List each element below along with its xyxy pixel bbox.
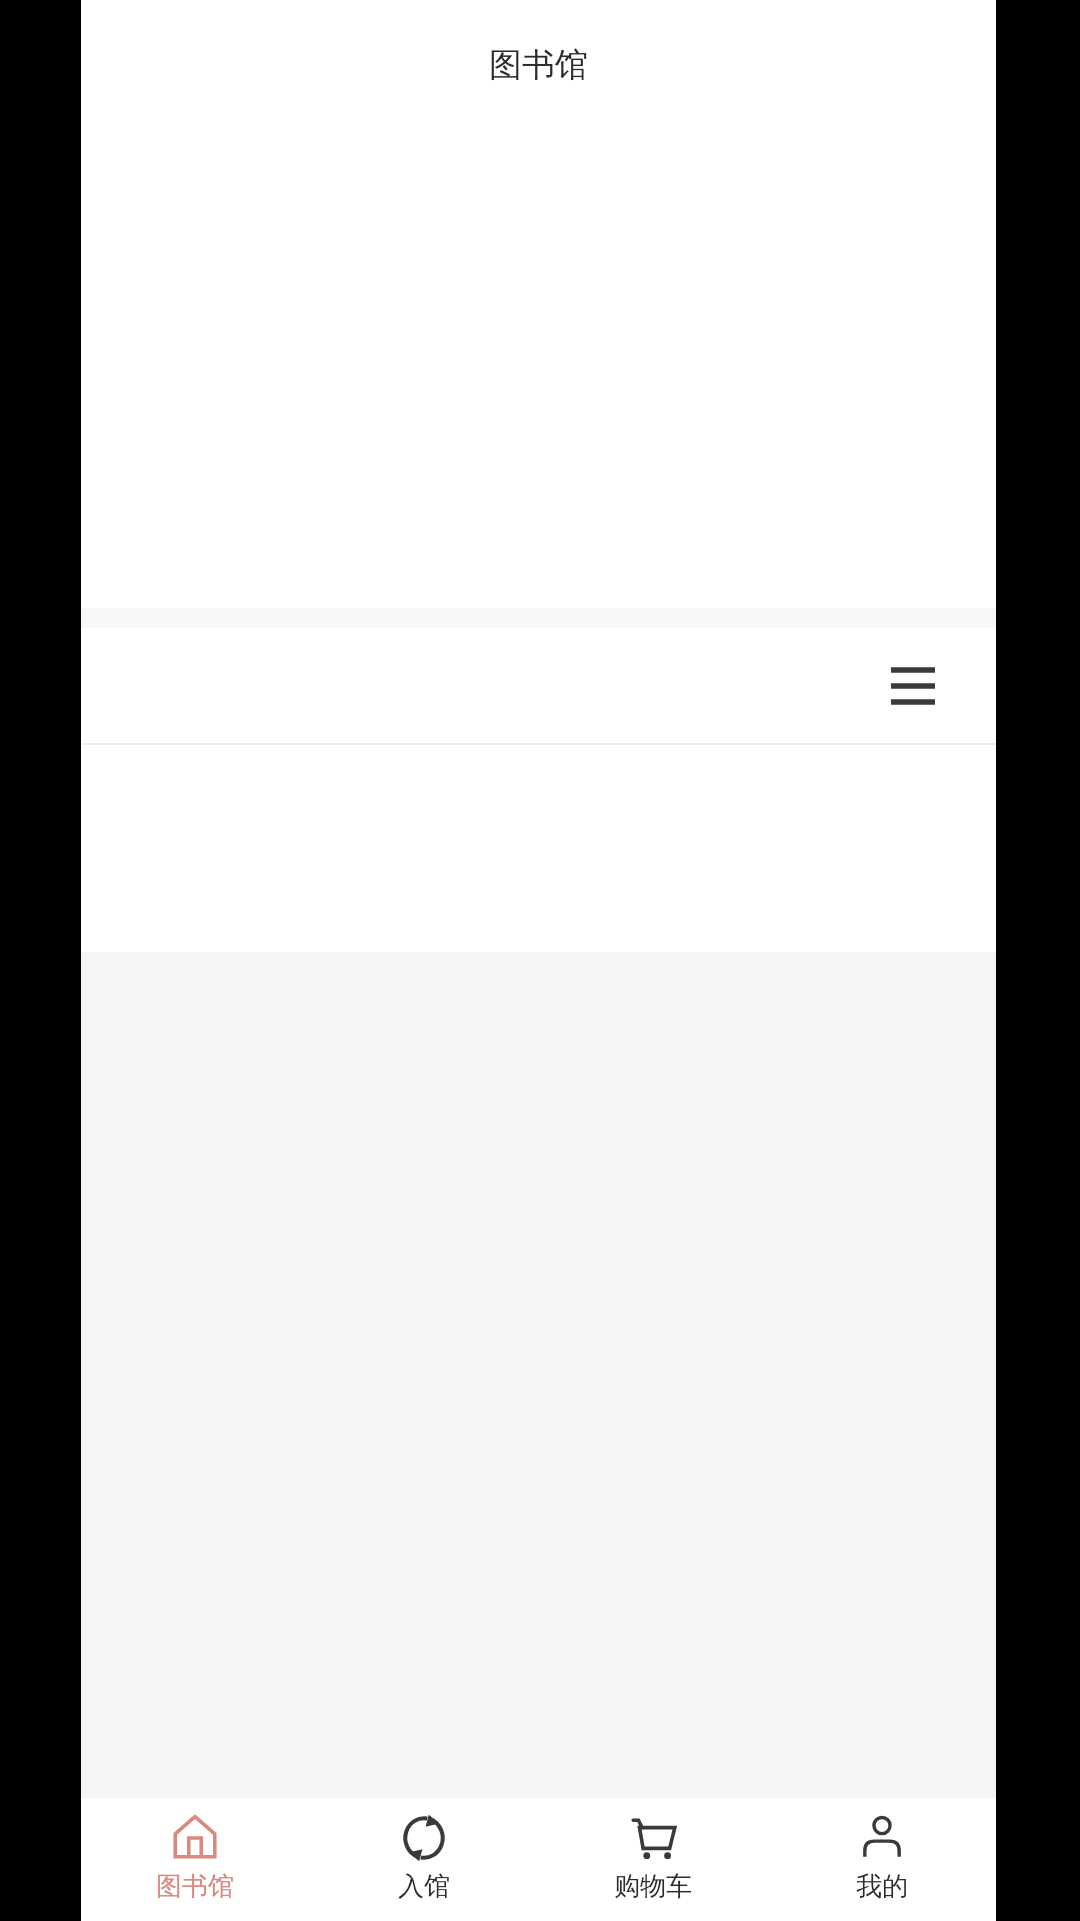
button[interactable]: 入馆 [309,1798,538,1921]
button[interactable]: Menu [883,656,943,716]
staticText: 图书馆 [156,1870,234,1903]
button[interactable]: 图书馆 [81,1798,309,1921]
staticText: 入馆 [398,1870,450,1903]
staticText: 我的 [856,1870,908,1903]
staticText: 图书馆 [489,44,588,86]
button[interactable]: 购物车 [538,1798,767,1921]
button[interactable]: 我的 [767,1798,996,1921]
staticText: 购物车 [614,1870,692,1903]
